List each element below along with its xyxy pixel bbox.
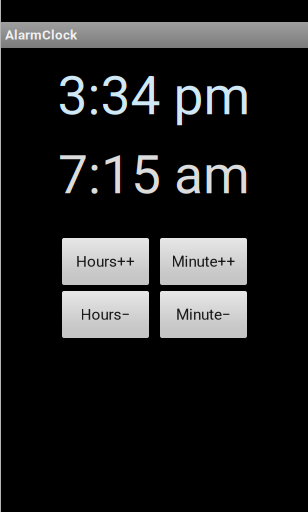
staticText: Hours++ [76,252,135,270]
staticText: 7:15 am [58,144,250,206]
staticText: Minute++ [171,252,235,270]
staticText: Hours− [80,305,130,323]
button[interactable]: Hours++ [62,238,149,285]
staticText: AlarmClock [5,27,77,43]
button[interactable]: Hours− [62,291,149,338]
staticText: 3:34 pm [57,65,250,127]
staticText: Minute− [176,305,231,323]
button[interactable]: Minute− [160,291,247,338]
button[interactable]: Minute++ [160,238,247,285]
